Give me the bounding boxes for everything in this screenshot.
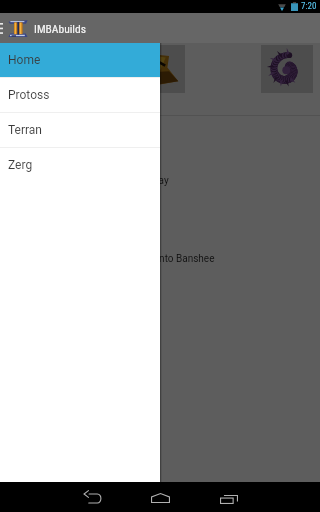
staticText: IMBAbuilds [34, 22, 86, 35]
staticText: Terran [8, 123, 42, 137]
button[interactable]: Protoss [0, 78, 160, 112]
button[interactable]: Home [0, 43, 160, 77]
button[interactable]: Zerg [0, 148, 160, 182]
staticText: Reaper into Banshee [123, 253, 215, 265]
button[interactable]: Home [138, 482, 183, 512]
staticText: Protoss [8, 88, 50, 102]
button[interactable]: Open navigation drawer [0, 13, 8, 43]
staticText: Build of the day [100, 175, 169, 187]
staticText: Zerg [8, 158, 33, 172]
button[interactable]: Race icon [261, 45, 313, 93]
button[interactable]: Terran [0, 113, 160, 147]
staticText: 7:20 [301, 1, 317, 12]
staticText: Home [8, 53, 41, 67]
button[interactable]: Race icon [5, 45, 57, 93]
button[interactable]: Recent apps [206, 482, 251, 512]
button[interactable]: Back [70, 482, 115, 512]
button[interactable]: Race icon [133, 45, 185, 93]
